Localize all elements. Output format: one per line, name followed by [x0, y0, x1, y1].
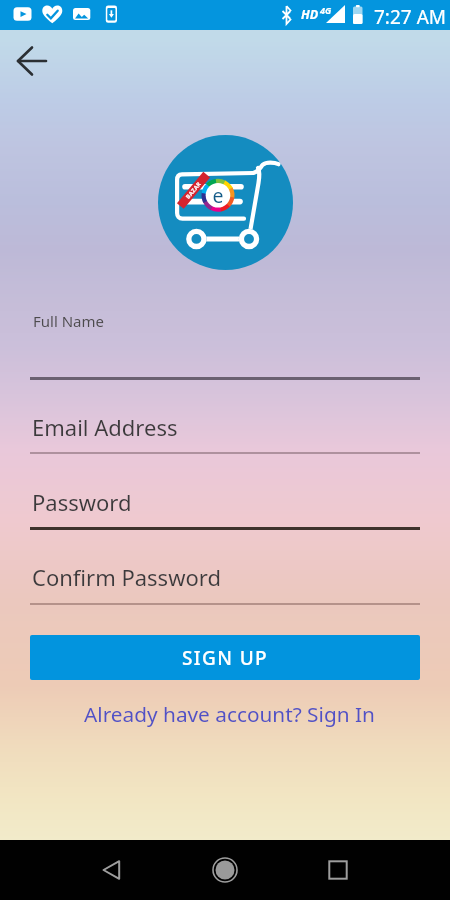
- button[interactable]: Home: [195, 840, 255, 900]
- button[interactable]: SIGN UP: [30, 635, 420, 680]
- staticText: Password: [32, 487, 132, 517]
- button[interactable]: Already have account? Sign In: [29, 697, 429, 731]
- button[interactable]: Back: [6, 36, 55, 85]
- button[interactable]: Recents: [308, 840, 368, 900]
- button[interactable]: Back: [82, 840, 142, 900]
- staticText: 4G: [320, 4, 332, 16]
- staticText: Confirm Password: [32, 562, 221, 592]
- staticText: Full Name: [33, 311, 104, 331]
- staticText: HD: [301, 6, 319, 23]
- staticText: SIGN UP: [182, 645, 269, 671]
- staticText: 7:27 AM: [374, 4, 447, 30]
- staticText: Email Address: [32, 412, 178, 442]
- staticText: Already have account? Sign In: [84, 700, 375, 728]
